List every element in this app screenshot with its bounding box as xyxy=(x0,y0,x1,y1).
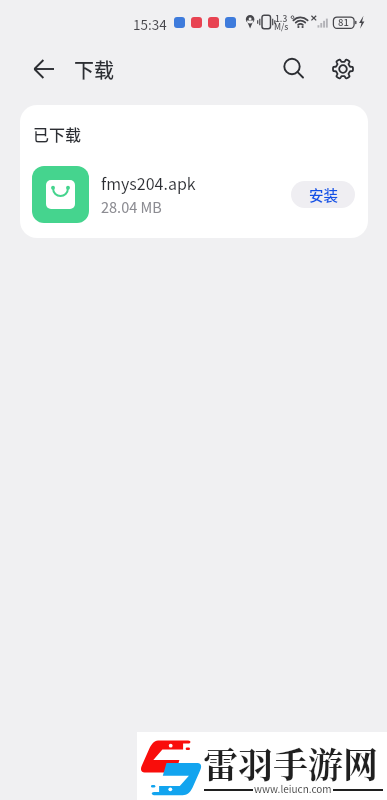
staticText: www.leiucn.com xyxy=(254,781,332,795)
staticText: 1.3 xyxy=(275,12,288,24)
staticText: 雷羽手游网 xyxy=(203,738,379,788)
button[interactable]: fmys204.apk xyxy=(32,159,355,229)
staticText: 15:34 xyxy=(133,14,167,34)
staticText: 安装 xyxy=(309,184,338,205)
staticText: 下载 xyxy=(74,55,114,84)
button[interactable]: Settings xyxy=(321,47,365,91)
button[interactable]: Back xyxy=(20,45,68,93)
staticText: 81 xyxy=(338,15,349,29)
button[interactable]: 安装 xyxy=(291,181,355,208)
staticText: fmys204.apk xyxy=(101,171,196,194)
staticText: M/s xyxy=(274,20,289,32)
staticText: 已下载 xyxy=(33,122,82,145)
staticText: 28.04 MB xyxy=(101,196,162,217)
button[interactable]: Search xyxy=(272,47,316,91)
